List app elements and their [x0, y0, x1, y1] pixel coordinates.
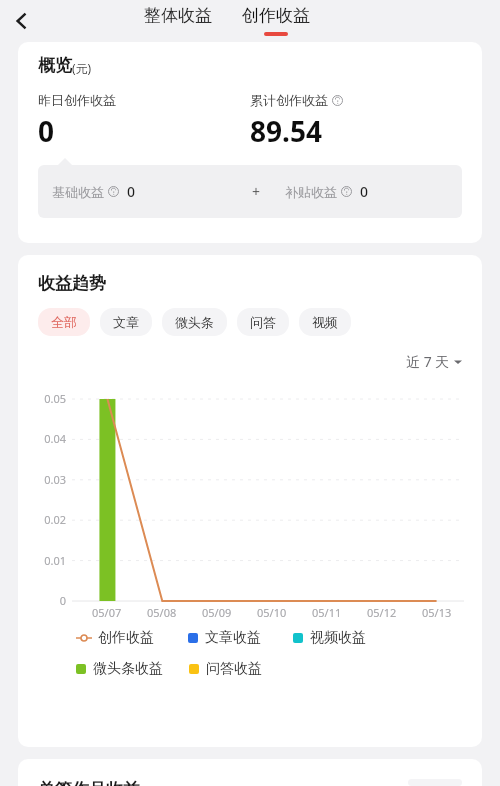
staticText: 视频收益: [310, 629, 366, 647]
staticText: (元): [72, 60, 92, 76]
button[interactable]: 问答: [237, 308, 289, 336]
staticText: 0.04: [44, 431, 66, 446]
staticText: 近 7 天: [406, 352, 450, 371]
button[interactable]: 微头条收益: [76, 660, 163, 678]
staticText: 0: [38, 112, 55, 150]
staticText: +: [252, 182, 261, 201]
staticText: 收益趋势: [38, 273, 106, 294]
button[interactable]: 微头条: [162, 308, 227, 336]
staticText: 全部: [51, 314, 77, 330]
button[interactable]: 整体收益: [140, 5, 216, 36]
staticText: 05/12: [367, 605, 397, 620]
staticText: 0: [360, 182, 369, 201]
staticText: 05/09: [202, 605, 232, 620]
button[interactable]: 创作收益: [76, 629, 154, 647]
staticText: 0.02: [44, 512, 66, 527]
staticText: 补贴收益: [285, 184, 337, 200]
staticText: 05/11: [312, 605, 342, 620]
button[interactable]: 视频: [299, 308, 351, 336]
staticText: 昨日创作收益: [38, 92, 116, 108]
staticText: 0.03: [44, 472, 66, 487]
staticText: 89.54: [250, 112, 322, 150]
staticText: 0.05: [44, 391, 66, 406]
staticText: 微头条收益: [93, 660, 163, 678]
staticText: 创作收益: [98, 629, 154, 647]
staticText: 05/10: [257, 605, 287, 620]
staticText: 创作收益: [242, 5, 310, 26]
staticText: 概览: [38, 55, 72, 76]
staticText: 05/13: [422, 605, 452, 620]
staticText: 文章: [113, 314, 139, 330]
button[interactable]: 基础收益: [38, 165, 462, 218]
button[interactable]: 近 7 天: [406, 352, 462, 371]
staticText: 文章收益: [205, 629, 261, 647]
button[interactable]: Back: [0, 0, 44, 42]
staticText: 问答: [250, 314, 276, 330]
staticText: 0: [59, 593, 66, 608]
staticText: 视频: [312, 314, 338, 330]
button[interactable]: 创作收益: [238, 5, 314, 36]
staticText: 单篇作品收益: [38, 779, 140, 786]
button[interactable]: 问答收益: [189, 660, 262, 678]
staticText: 基础收益: [52, 184, 104, 200]
button[interactable]: 全部: [38, 308, 90, 336]
button[interactable]: 视频收益: [293, 629, 366, 647]
staticText: 0: [127, 182, 136, 201]
staticText: 累计创作收益: [250, 92, 328, 108]
staticText: 05/07: [92, 605, 122, 620]
button[interactable]: 文章收益: [188, 629, 261, 647]
staticText: 05/08: [147, 605, 177, 620]
staticText: 问答收益: [206, 660, 262, 678]
staticText: 0.01: [44, 553, 66, 568]
staticText: 整体收益: [144, 5, 212, 26]
button[interactable]: 文章: [100, 308, 152, 336]
staticText: 微头条: [175, 314, 214, 330]
